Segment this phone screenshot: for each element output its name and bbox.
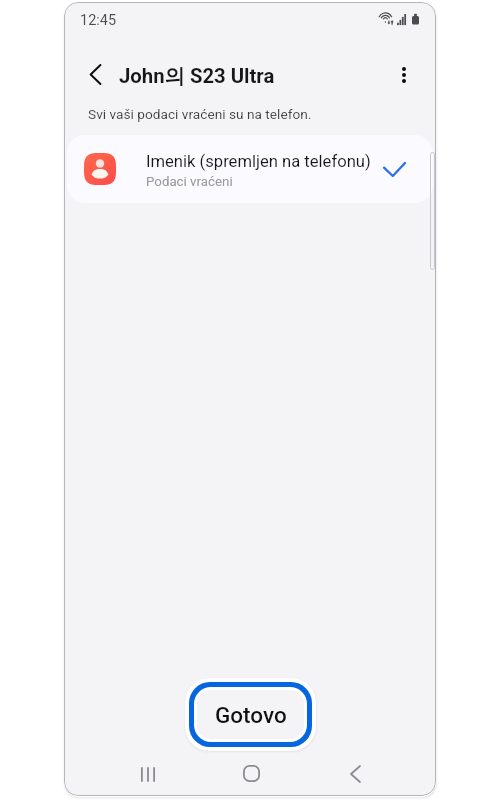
button[interactable]: Recent apps xyxy=(124,752,172,796)
button[interactable]: More options xyxy=(384,55,424,95)
staticText: John의 S23 Ultra xyxy=(119,63,275,89)
button[interactable]: Gotovo xyxy=(197,690,304,739)
staticText: Imenik (spremljen na telefonu) xyxy=(146,152,371,171)
button[interactable]: Back xyxy=(331,752,379,796)
staticText: Svi vaši podaci vraćeni su na telefon. xyxy=(88,106,312,122)
staticText: 12:45 xyxy=(80,12,117,29)
staticText: Gotovo xyxy=(215,702,287,728)
button[interactable]: Home xyxy=(227,751,275,795)
button[interactable]: Imenik (spremljen na telefonu) xyxy=(67,135,433,203)
staticText: Podaci vraćeni xyxy=(146,174,233,190)
button[interactable]: Navigate up xyxy=(75,54,115,94)
